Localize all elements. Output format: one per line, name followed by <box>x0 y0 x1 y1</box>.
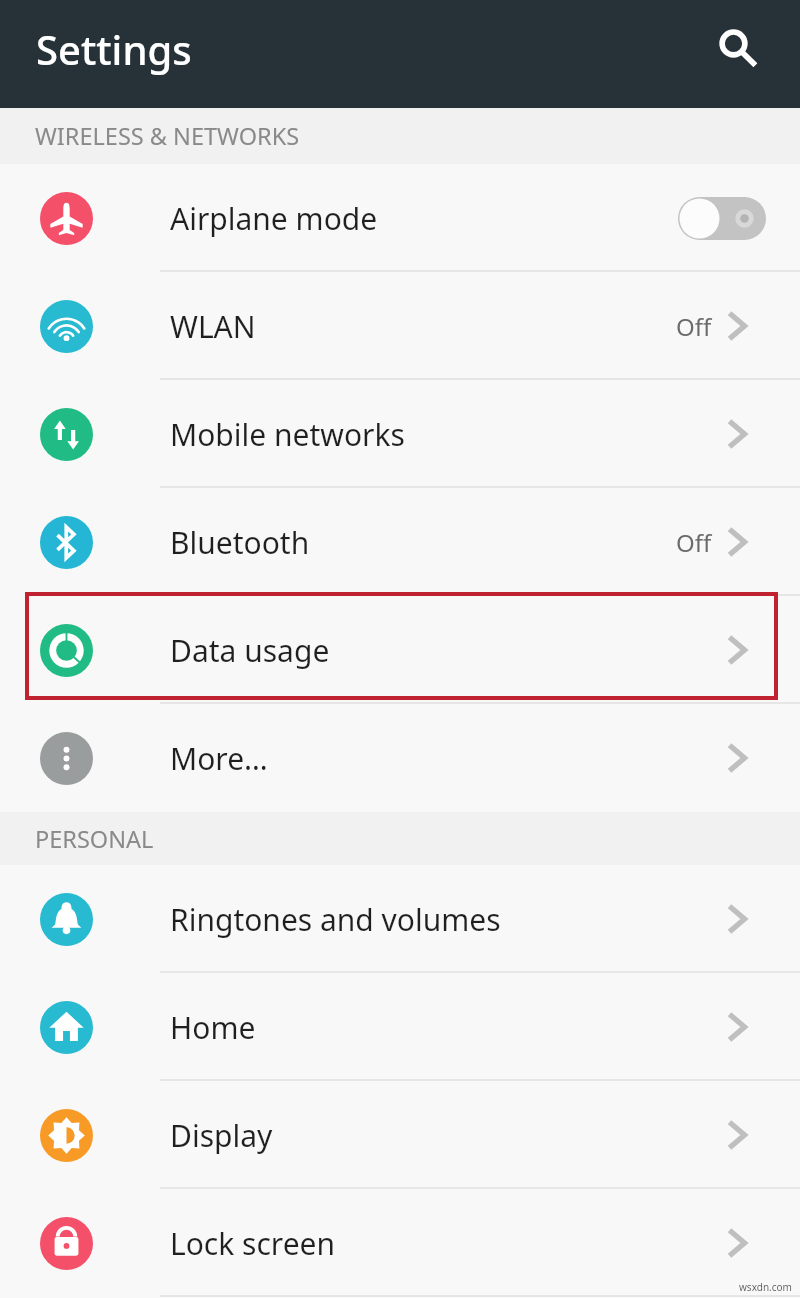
staticText: Home <box>170 1007 256 1048</box>
staticText: More… <box>170 738 268 779</box>
staticText: Mobile networks <box>170 414 405 455</box>
staticText: Bluetooth <box>170 522 310 563</box>
staticText: Display <box>170 1115 273 1156</box>
staticText: WLAN <box>170 306 256 347</box>
staticText: Lock screen <box>170 1223 336 1264</box>
button[interactable]: Ringtones and volumes <box>0 865 800 973</box>
staticText: Data usage <box>170 630 330 671</box>
button[interactable]: Data usage <box>0 596 800 704</box>
button[interactable]: Lock screen <box>0 1189 800 1297</box>
staticText: Airplane mode <box>170 198 378 239</box>
button[interactable]: Airplane mode <box>0 164 800 272</box>
button[interactable]: Home <box>0 973 800 1081</box>
staticText: Off <box>676 310 712 343</box>
staticText: Ringtones and volumes <box>170 899 501 940</box>
button[interactable]: WLAN <box>0 272 800 380</box>
button[interactable]: Display <box>0 1081 800 1189</box>
staticText: Settings <box>36 22 192 76</box>
staticText: Off <box>676 526 712 559</box>
staticText: WIRELESS & NETWORKS <box>35 120 300 152</box>
button[interactable]: Mobile networks <box>0 380 800 488</box>
staticText: PERSONAL <box>35 823 154 855</box>
button[interactable]: Search <box>709 23 771 85</box>
button[interactable]: Bluetooth <box>0 488 800 596</box>
staticText: wsxdn.com <box>739 1280 792 1294</box>
button[interactable]: More… <box>0 704 800 812</box>
